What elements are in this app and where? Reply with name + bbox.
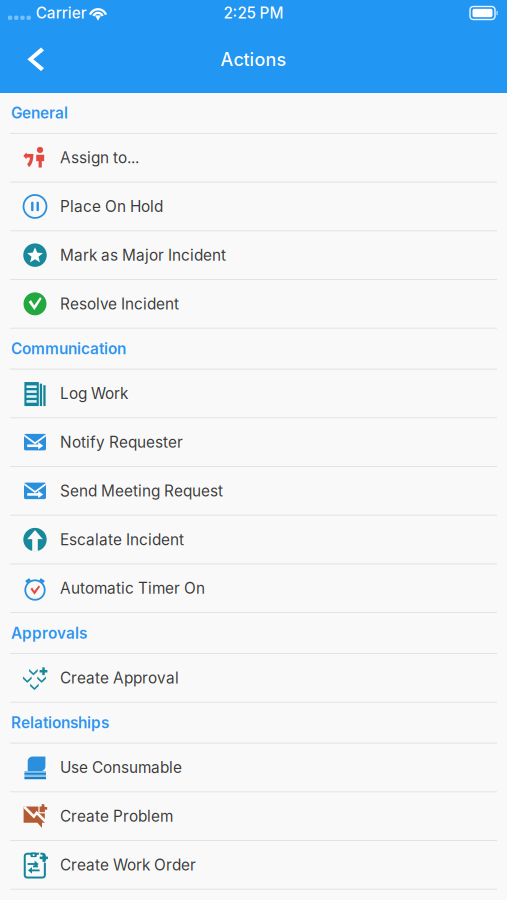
button[interactable]: Resolve Incident [0, 280, 507, 328]
staticText: Log Work [60, 384, 128, 403]
staticText: Create Problem [60, 807, 173, 825]
staticText: Assign to... [60, 148, 139, 167]
staticText: Communication [11, 339, 126, 358]
staticText: Escalate Incident [60, 530, 184, 549]
staticText: 2:25 PM [223, 4, 283, 22]
button[interactable]: Create Work Order [0, 841, 507, 889]
button[interactable]: Back [0, 35, 65, 83]
button[interactable]: Create Approval [0, 654, 507, 702]
staticText: Notify Requester [60, 433, 183, 451]
staticText: Carrier [36, 4, 87, 22]
staticText: Create Work Order [60, 856, 196, 874]
button[interactable]: Send Meeting Request [0, 467, 507, 515]
staticText: Place On Hold [60, 197, 163, 216]
staticText: Use Consumable [60, 758, 182, 777]
staticText: General [11, 104, 68, 122]
staticText: Relationships [11, 713, 109, 732]
staticText: Mark as Major Incident [60, 246, 226, 264]
button[interactable]: Mark as Major Incident [0, 231, 507, 279]
staticText: Automatic Timer On [60, 579, 205, 598]
button[interactable]: Assign to... [0, 134, 507, 182]
button[interactable]: Escalate Incident [0, 516, 507, 563]
staticText: Create Approval [60, 669, 179, 687]
staticText: Approvals [11, 624, 87, 642]
staticText: Resolve Incident [60, 295, 179, 313]
button[interactable]: Log Work [0, 370, 507, 417]
button[interactable]: Use Consumable [0, 744, 507, 791]
button[interactable]: Automatic Timer On [0, 564, 507, 612]
staticText: Send Meeting Request [60, 482, 223, 500]
button[interactable]: Place On Hold [0, 183, 507, 230]
button[interactable]: Create Problem [0, 792, 507, 840]
button[interactable]: Notify Requester [0, 418, 507, 466]
staticText: Actions [220, 49, 286, 70]
